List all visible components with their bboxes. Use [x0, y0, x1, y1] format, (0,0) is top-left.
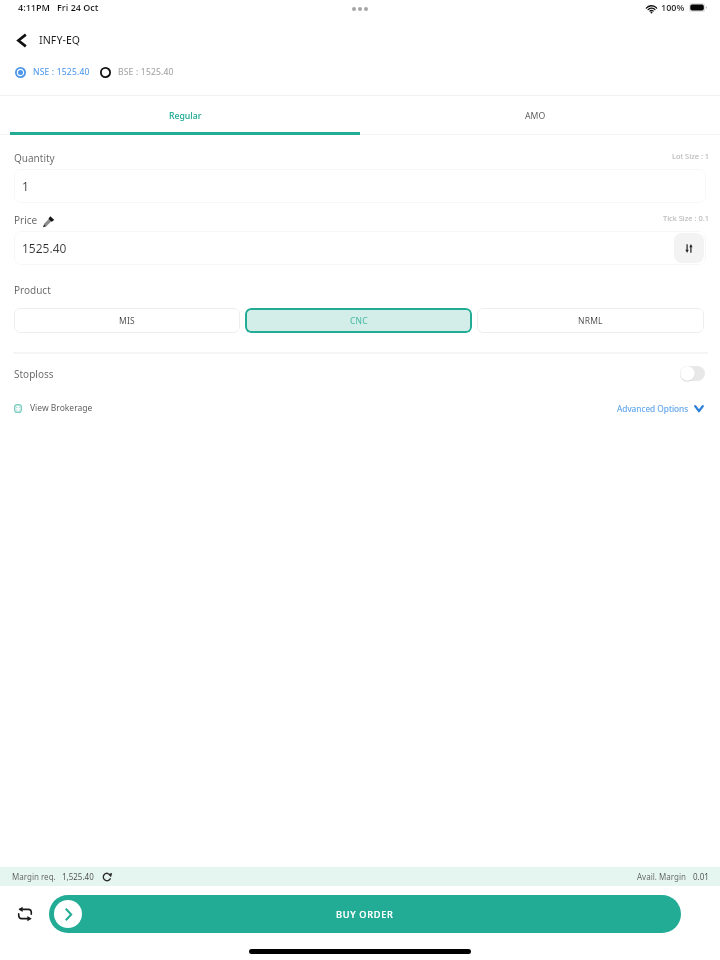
- staticText: Regular: [169, 110, 202, 122]
- button[interactable]: NSE : 1525.40: [15, 66, 90, 78]
- staticText: BUY ORDER: [336, 908, 394, 921]
- staticText: Tick Size : 0.1: [663, 213, 709, 223]
- staticText: INFY-EQ: [39, 33, 80, 47]
- staticText: NSE : 1525.40: [33, 66, 90, 78]
- button[interactable]: MIS: [14, 308, 240, 333]
- button[interactable]: 1: [14, 169, 706, 203]
- staticText: 1525.40: [22, 240, 67, 256]
- staticText: CNC: [350, 315, 368, 327]
- staticText: Fri 24 Oct: [57, 1, 99, 13]
- staticText: Price: [14, 213, 38, 227]
- staticText: 1,525.40: [62, 871, 94, 882]
- button[interactable]: Back: [8, 27, 35, 54]
- button[interactable]: Slide to place order: [54, 900, 82, 928]
- staticText: View Brokerage: [30, 402, 93, 414]
- staticText: Advanced Options: [617, 403, 689, 414]
- staticText: AMO: [525, 110, 546, 122]
- staticText: Avail. Margin: [637, 871, 686, 882]
- button[interactable]: BUY ORDER: [49, 895, 681, 933]
- staticText: Quantity: [14, 151, 55, 165]
- staticText: 0.01: [693, 871, 709, 882]
- staticText: Lot Size : 1: [672, 151, 710, 161]
- button[interactable]: CNC: [245, 308, 472, 333]
- staticText: 100%: [661, 1, 685, 13]
- staticText: Product: [14, 283, 51, 297]
- staticText: BSE : 1525.40: [118, 66, 174, 78]
- button[interactable]: NRML: [477, 308, 704, 333]
- staticText: 4:11PM: [18, 1, 50, 13]
- button[interactable]: Advanced Options: [617, 403, 704, 414]
- button[interactable]: Swap order type: [674, 233, 704, 263]
- button[interactable]: Stoploss toggle: [680, 366, 705, 381]
- button[interactable]: BSE : 1525.40: [100, 66, 174, 78]
- button[interactable]: Toggle buy sell: [12, 901, 38, 927]
- staticText: MIS: [119, 315, 135, 327]
- button[interactable]: AMO: [360, 92, 710, 133]
- button[interactable]: Refresh margin: [102, 872, 112, 882]
- staticText: Margin req.: [12, 871, 56, 882]
- staticText: Stoploss: [14, 367, 54, 381]
- staticText: NRML: [578, 315, 603, 327]
- staticText: 1: [22, 178, 29, 194]
- button[interactable]: View Brokerage: [13, 401, 94, 415]
- button[interactable]: Regular: [10, 92, 360, 133]
